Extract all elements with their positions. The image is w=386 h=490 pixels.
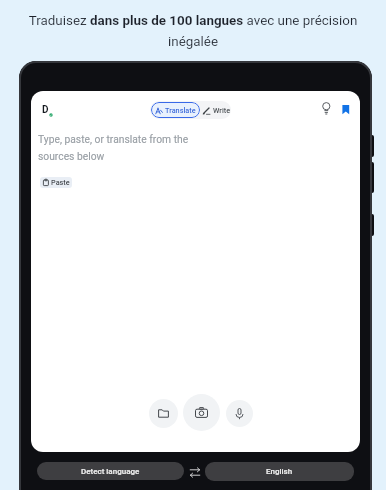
button[interactable] <box>189 466 201 479</box>
button[interactable]: Paste <box>40 177 72 188</box>
staticText: Translate <box>165 106 196 115</box>
button[interactable] <box>149 399 178 428</box>
button[interactable]: Detect language <box>37 462 184 480</box>
staticText: Type, paste, or translate from the sourc… <box>38 133 189 162</box>
button[interactable]: Translate <box>151 102 200 118</box>
staticText: Paste <box>51 178 70 187</box>
staticText: English <box>266 467 293 476</box>
button[interactable] <box>342 105 350 115</box>
staticText: Write <box>213 106 231 115</box>
staticText: Traduisez dans plus de 100 langues avec … <box>0 13 386 49</box>
button[interactable]: D <box>42 104 49 116</box>
staticText: Detect language <box>81 467 140 476</box>
button[interactable]: Write <box>202 101 231 119</box>
button[interactable]: English <box>205 462 354 481</box>
button[interactable] <box>320 100 333 116</box>
button[interactable] <box>226 400 253 427</box>
button[interactable] <box>183 394 220 431</box>
